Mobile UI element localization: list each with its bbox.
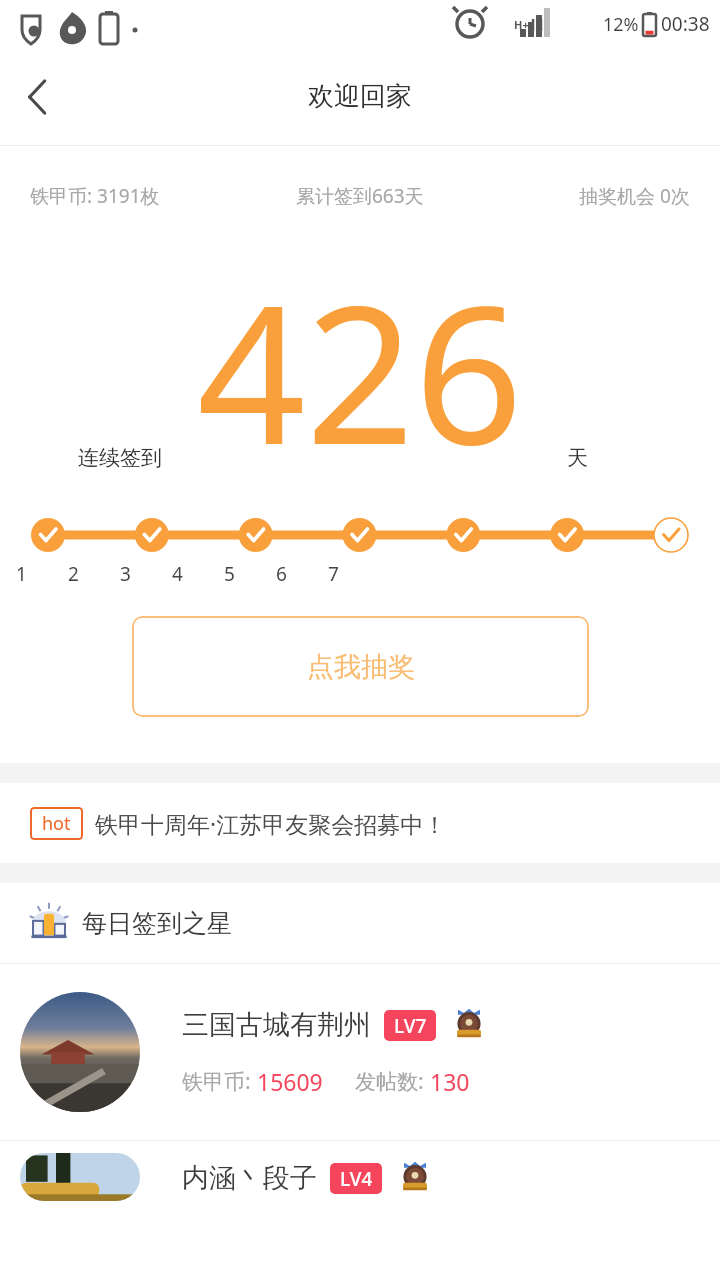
staticText: 内涵丶段子 <box>182 1161 317 1195</box>
staticText: 12% <box>603 12 639 37</box>
staticText: 7 <box>328 561 339 587</box>
staticText: 点我抽奖 <box>307 650 415 684</box>
staticText: 天 <box>567 445 588 471</box>
staticText: 每日签到之星 <box>82 908 232 939</box>
staticText: hot <box>42 811 71 836</box>
staticText: 三国古城有荆州 <box>182 1008 371 1042</box>
staticText: LV4 <box>340 1166 373 1192</box>
staticText: 4 <box>172 561 183 587</box>
staticText: 5 <box>224 561 235 587</box>
staticText: 130 <box>430 1066 470 1097</box>
button[interactable]: Back <box>0 61 72 133</box>
staticText: 2 <box>68 561 79 587</box>
staticText: LV7 <box>394 1013 427 1039</box>
staticText: 1 <box>16 561 27 587</box>
staticText: 抽奖机会 0次 <box>579 183 690 209</box>
button[interactable]: hot <box>0 783 720 863</box>
staticText: 15609 <box>257 1066 323 1097</box>
staticText: 6 <box>276 561 287 587</box>
button[interactable]: 三国古城有荆州 <box>0 964 720 1140</box>
staticText: 426 <box>197 241 524 500</box>
staticText: 00:38 <box>661 11 710 37</box>
staticText: 累计签到663天 <box>296 183 424 209</box>
staticText: 3 <box>120 561 131 587</box>
staticText: 连续签到 <box>78 445 162 471</box>
button[interactable]: 内涵丶段子 <box>0 1141 720 1201</box>
staticText: 欢迎回家 <box>308 80 412 113</box>
staticText: 发帖数: <box>355 1067 430 1096</box>
button[interactable]: 点我抽奖 <box>132 616 589 717</box>
staticText: H+ <box>514 17 529 32</box>
staticText: 铁甲币: <box>182 1067 257 1096</box>
staticText: 铁甲十周年·江苏甲友聚会招募中！ <box>95 808 447 839</box>
staticText: 铁甲币: 3191枚 <box>30 183 160 209</box>
